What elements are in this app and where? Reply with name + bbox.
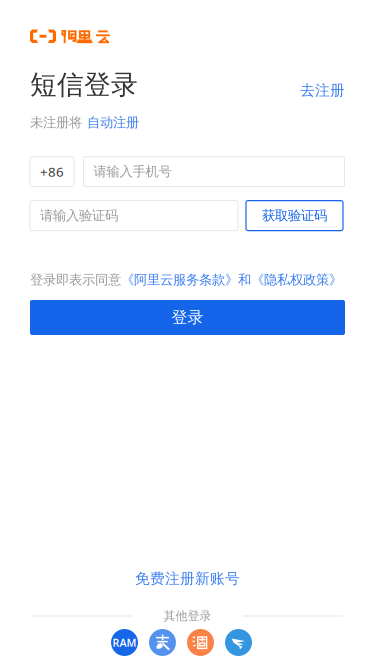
button[interactable]: 免费注册新账号 [0,569,375,587]
button[interactable]: Taobao login [187,629,214,656]
staticText: 去注册 [300,81,345,99]
staticText: 请输入手机号 [93,163,171,180]
staticText: 未注册将 [30,114,82,131]
button[interactable]: +86 [30,157,74,187]
button[interactable]: DingTalk login [225,629,252,656]
staticText: 自动注册 [87,114,139,131]
button[interactable]: RAM login [111,629,138,656]
button[interactable]: 登录 [30,300,345,335]
staticText: 请输入验证码 [40,207,118,224]
staticText: 《阿里云服务条款》和《隐私权政策》 [121,272,342,288]
staticText: 登录 [171,308,203,327]
button[interactable]: Alipay login [149,629,176,656]
staticText: +86 [40,163,64,180]
button[interactable]: 获取验证码 [246,201,343,231]
button[interactable]: 自动注册 [87,114,139,131]
staticText: 其他登录 [163,609,211,623]
staticText: RAM [112,635,136,650]
staticText: 短信登录 [30,68,138,101]
button[interactable]: 登录即表示同意 [30,272,342,288]
staticText: 获取验证码 [262,207,327,224]
button[interactable]: 去注册 [300,81,345,101]
staticText: 登录即表示同意 [30,272,121,288]
staticText: 免费注册新账号 [135,569,240,587]
